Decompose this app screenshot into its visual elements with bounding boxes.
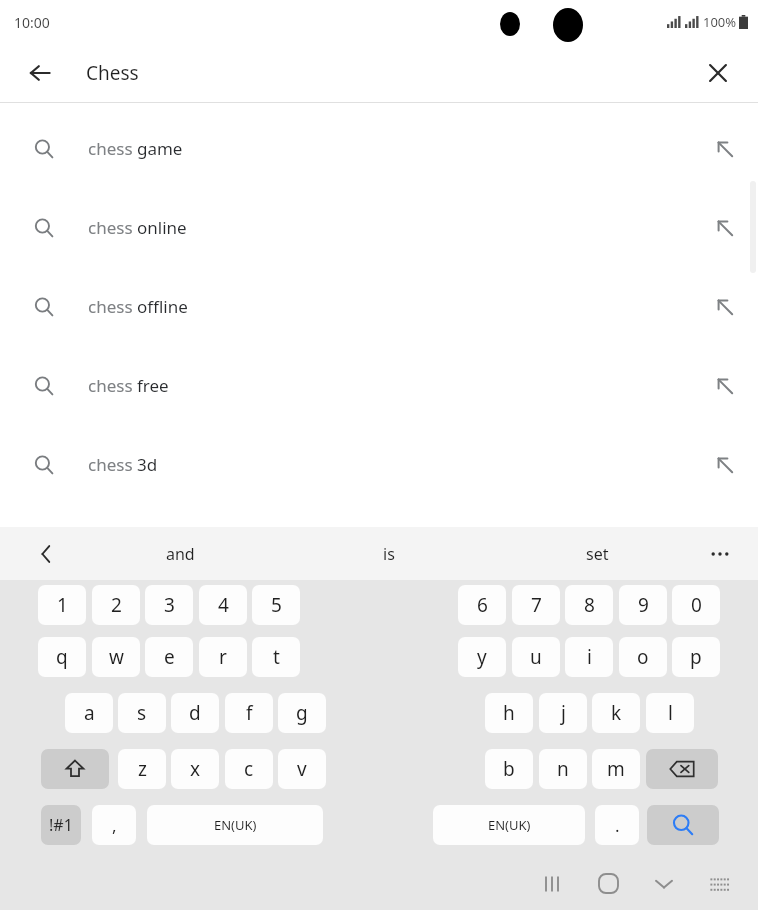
button[interactable]: Backspace <box>646 749 718 789</box>
button[interactable]: a <box>65 693 113 733</box>
button[interactable]: r <box>199 637 247 677</box>
staticText: e <box>164 644 175 670</box>
staticText: chess offline <box>88 295 188 318</box>
staticText: Chess <box>86 60 139 86</box>
button[interactable]: 0 <box>672 585 720 625</box>
staticText: chess online <box>88 216 187 239</box>
staticText: p <box>690 644 702 670</box>
button[interactable]: , <box>92 805 136 845</box>
staticText: s <box>137 700 147 726</box>
button[interactable]: Clear search <box>696 51 740 95</box>
button[interactable]: Home <box>580 857 636 910</box>
staticText: g <box>296 700 308 726</box>
button[interactable]: 3 <box>145 585 193 625</box>
button[interactable]: 6 <box>458 585 506 625</box>
button[interactable]: Search <box>647 805 719 845</box>
button[interactable]: 8 <box>565 585 613 625</box>
button[interactable]: g <box>278 693 326 733</box>
staticText: b <box>503 756 515 782</box>
staticText: and <box>166 543 195 565</box>
staticText: 8 <box>584 592 595 618</box>
button[interactable]: u <box>512 637 560 677</box>
button[interactable]: EN(UK) <box>433 805 585 845</box>
staticText: , <box>112 814 117 837</box>
button[interactable]: 2 <box>92 585 140 625</box>
button[interactable]: is <box>284 527 493 580</box>
button[interactable]: z <box>118 749 166 789</box>
button[interactable]: l <box>646 693 694 733</box>
button[interactable]: EN(UK) <box>147 805 323 845</box>
staticText: q <box>56 644 68 670</box>
button[interactable]: v <box>278 749 326 789</box>
button[interactable]: i <box>565 637 613 677</box>
button[interactable]: More options <box>700 534 740 574</box>
button[interactable]: c <box>225 749 273 789</box>
staticText: chess free <box>88 374 169 397</box>
button[interactable]: 4 <box>199 585 247 625</box>
button[interactable]: h <box>485 693 533 733</box>
button[interactable]: Recent apps <box>524 857 580 910</box>
staticText: 100% <box>703 13 737 31</box>
button[interactable]: Shift <box>41 749 109 789</box>
button[interactable]: m <box>592 749 640 789</box>
button[interactable]: b <box>485 749 533 789</box>
button[interactable]: t <box>252 637 300 677</box>
staticText: f <box>246 700 253 726</box>
button[interactable]: d <box>171 693 219 733</box>
staticText: chess game <box>88 137 183 160</box>
button[interactable]: 5 <box>252 585 300 625</box>
staticText: 4 <box>218 592 229 618</box>
button[interactable]: 7 <box>512 585 560 625</box>
staticText: i <box>587 644 592 670</box>
staticText: !#1 <box>49 814 73 836</box>
button[interactable]: k <box>592 693 640 733</box>
button[interactable]: s <box>118 693 166 733</box>
button[interactable]: chess offline <box>0 267 758 346</box>
staticText: is <box>383 543 395 565</box>
staticText: m <box>607 756 625 782</box>
button[interactable]: chess 3d <box>0 425 758 504</box>
staticText: j <box>561 700 566 726</box>
staticText: x <box>190 756 201 782</box>
button[interactable]: . <box>595 805 639 845</box>
staticText: v <box>297 756 307 782</box>
staticText: n <box>557 756 569 782</box>
staticText: a <box>84 700 95 726</box>
button[interactable]: Previous suggestions <box>26 534 66 574</box>
button[interactable]: p <box>672 637 720 677</box>
staticText: 5 <box>271 592 282 618</box>
button[interactable]: chess online <box>0 188 758 267</box>
button[interactable]: set <box>493 527 702 580</box>
button[interactable]: chess free <box>0 346 758 425</box>
button[interactable]: o <box>619 637 667 677</box>
button[interactable]: Hide keyboard <box>636 857 692 910</box>
button[interactable]: and <box>76 527 284 580</box>
staticText: chess 3d <box>88 453 158 476</box>
staticText: 6 <box>477 592 488 618</box>
button[interactable]: Back <box>18 51 62 95</box>
button[interactable]: y <box>458 637 506 677</box>
staticText: w <box>109 644 124 670</box>
button[interactable]: n <box>539 749 587 789</box>
button[interactable]: e <box>145 637 193 677</box>
staticText: o <box>637 644 649 670</box>
staticText: 0 <box>691 592 702 618</box>
staticText: c <box>244 756 254 782</box>
staticText: u <box>530 644 542 670</box>
button[interactable]: chess game <box>0 109 758 188</box>
staticText: EN(UK) <box>488 816 531 834</box>
staticText: l <box>668 700 673 726</box>
button[interactable]: 9 <box>619 585 667 625</box>
button[interactable]: x <box>171 749 219 789</box>
staticText: EN(UK) <box>214 816 257 834</box>
button[interactable]: q <box>38 637 86 677</box>
button[interactable]: !#1 <box>41 805 81 845</box>
button[interactable]: f <box>225 693 273 733</box>
button[interactable]: 1 <box>38 585 86 625</box>
button[interactable]: Keyboard layout <box>692 857 748 910</box>
staticText: 7 <box>531 592 542 618</box>
staticText: z <box>138 756 147 782</box>
button[interactable]: w <box>92 637 140 677</box>
button[interactable]: j <box>539 693 587 733</box>
staticText: 1 <box>57 592 68 618</box>
